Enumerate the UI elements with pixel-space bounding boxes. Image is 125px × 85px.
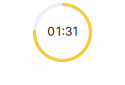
staticText: 01:31	[47, 24, 78, 39]
staticText: remaining	[54, 37, 70, 41]
button[interactable]: Timer, 01:31 remaining	[0, 0, 125, 85]
